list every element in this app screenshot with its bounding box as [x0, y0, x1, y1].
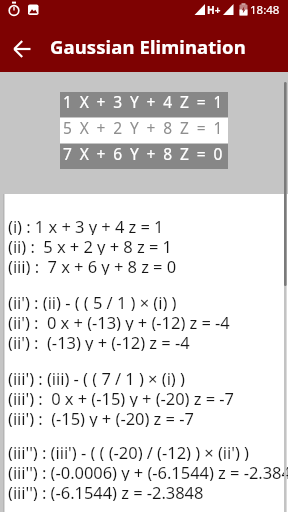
- staticText: (ii') : 0 x + (-13) y + (-12) z = -4: [8, 311, 230, 331]
- staticText: (ii) : 5 x + 2 y + 8 z = 1: [8, 235, 172, 255]
- staticText: (iii') : 0 x + (-15) y + (-20) z = -7: [8, 387, 234, 407]
- staticText: (iii'') : (iii') - ( ( (-20) / (-12) ) ×…: [8, 441, 249, 461]
- button[interactable]: [0, 19, 44, 72]
- staticText: (iii') : (-15) y + (-20) z = -7: [8, 407, 194, 427]
- staticText: (ii') : (ii) - ( ( 5 / 1 ) × (i) ): [8, 291, 177, 311]
- button[interactable]: 7 X + 6 Y + 8 Z = 0: [60, 144, 228, 169]
- staticText: 1 X + 3 Y + 4 Z = 1: [63, 91, 225, 112]
- staticText: (iii') : (iii) - ( ( 7 / 1 ) × (i) ): [8, 367, 185, 387]
- staticText: Gaussian Elimination: [50, 34, 246, 59]
- staticText: (iii'') : (-0.0006) y + (-6.1544) z = -2…: [8, 461, 288, 481]
- staticText: (iii) : 7 x + 6 y + 8 z = 0: [8, 255, 177, 275]
- button[interactable]: 5 X + 2 Y + 8 Z = 1: [60, 118, 228, 143]
- button[interactable]: 1 X + 3 Y + 4 Z = 1: [60, 92, 228, 117]
- staticText: 18:48: [250, 2, 280, 18]
- staticText: (ii') : (-13) y + (-12) z = -4: [8, 331, 190, 351]
- staticText: 5 X + 2 Y + 8 Z = 1: [63, 117, 225, 138]
- staticText: 7 X + 6 Y + 8 Z = 0: [63, 143, 225, 164]
- staticText: (iii'') : (-6.1544) z = -2.3848: [8, 481, 204, 501]
- staticText: (i) : 1 x + 3 y + 4 z = 1: [8, 215, 164, 235]
- staticText: H+: [207, 3, 221, 17]
